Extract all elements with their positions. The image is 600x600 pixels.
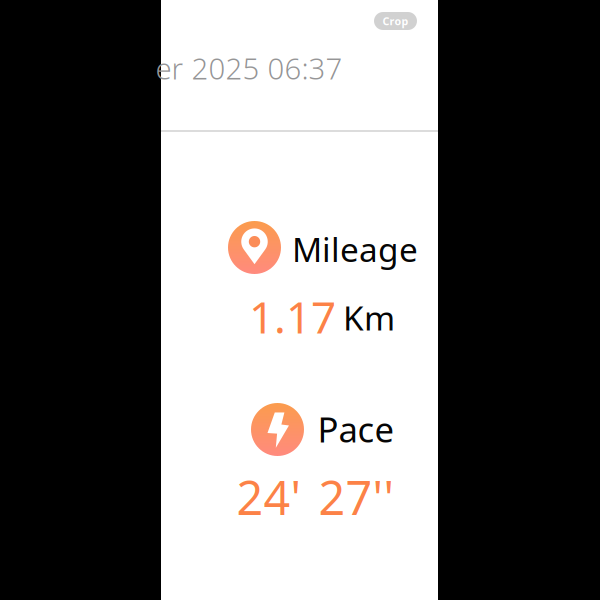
staticText: 24' 27'' bbox=[236, 466, 394, 528]
button[interactable]: Mileage bbox=[161, 220, 438, 344]
staticText: Km bbox=[343, 295, 395, 340]
staticText: Crop bbox=[382, 14, 408, 28]
staticText: er 2025 06:37 bbox=[155, 48, 342, 87]
button[interactable]: Crop bbox=[374, 12, 417, 30]
staticText: Mileage bbox=[292, 227, 418, 271]
staticText: Pace bbox=[317, 406, 394, 452]
staticText: 1.17 bbox=[249, 287, 336, 346]
button[interactable]: Pace bbox=[161, 402, 438, 526]
